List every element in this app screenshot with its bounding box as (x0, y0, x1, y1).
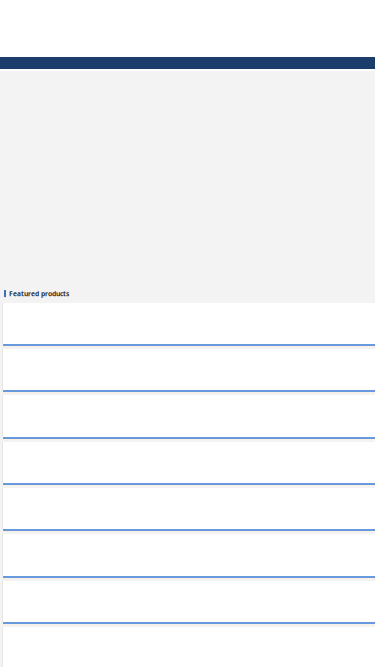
button[interactable] (0, 488, 375, 532)
button[interactable] (0, 395, 375, 440)
button[interactable] (0, 349, 375, 393)
button[interactable] (0, 581, 375, 625)
button[interactable] (0, 442, 375, 486)
button[interactable] (0, 534, 375, 579)
button[interactable] (0, 303, 375, 347)
staticText: Featured products (9, 289, 69, 298)
